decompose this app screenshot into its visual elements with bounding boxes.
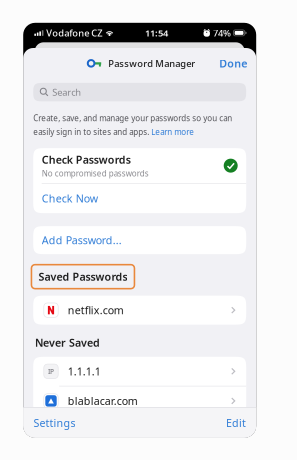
staticText: Search [52,86,81,98]
button[interactable]: IP [33,357,246,386]
staticText: Learn more [151,126,194,137]
staticText: Create, save, and manage your passwords … [33,113,232,123]
button[interactable]: Check Now [33,184,246,213]
staticText: Saved Passwords [38,270,127,284]
button[interactable]: Done [211,51,247,76]
staticText: Done [219,56,247,71]
staticText: Password Manager [108,57,195,70]
staticText: Add Password... [42,233,122,247]
staticText: Check Passwords [42,153,131,167]
staticText: Never Saved [35,336,100,350]
staticText: Edit [226,416,246,430]
staticText: 11:54 [145,27,168,39]
staticText: netflix.com [68,303,124,317]
staticText: Settings [33,416,75,430]
staticText: blablacar.com [68,394,138,408]
staticText: 1.1.1.1 [68,364,101,378]
staticText: Check Now [42,191,98,206]
button[interactable]: blablacar.com [33,386,246,415]
button[interactable]: Learn more [151,126,194,137]
button[interactable]: netflix.com [33,296,246,325]
staticText: No compromised passwords [42,168,149,179]
button[interactable]: Edit [226,416,246,430]
staticText: Vodafone CZ [46,27,102,39]
staticText: easily sign in to sites and apps. [33,126,151,137]
staticText: 74% [213,27,231,39]
button[interactable]: Settings [33,416,75,430]
staticText: IP [48,367,54,376]
button[interactable]: Add Password... [33,226,246,254]
